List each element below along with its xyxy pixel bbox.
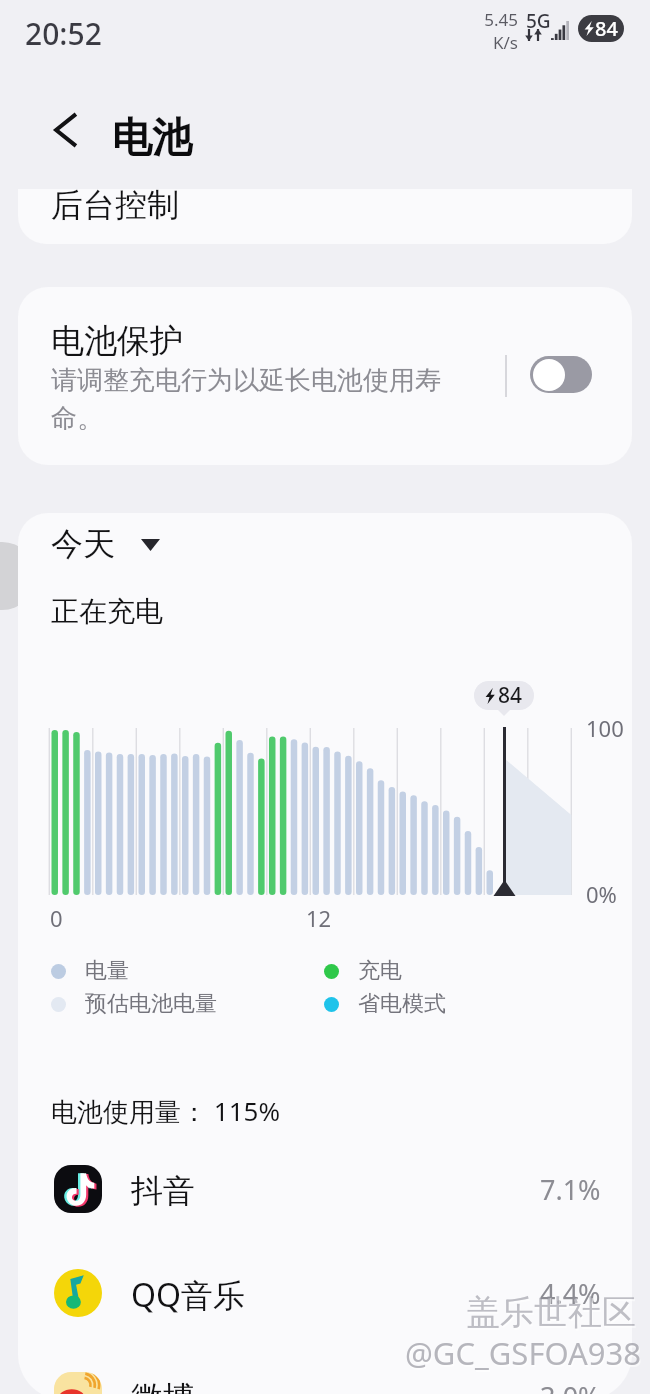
- staticText: 7.1%: [540, 1171, 601, 1208]
- staticText: 20:52: [25, 13, 102, 54]
- staticText: 4.4%: [540, 1275, 601, 1312]
- staticText: @GC_GSFOA938: [405, 1332, 642, 1374]
- button[interactable]: 后台控制: [18, 189, 632, 244]
- staticText: 电量: [85, 957, 129, 985]
- staticText: 今天: [51, 524, 115, 564]
- staticText: 12: [306, 903, 332, 933]
- staticText: 电池使用量： 115%: [51, 1093, 280, 1129]
- button[interactable]: Battery protection toggle: [530, 356, 592, 393]
- staticText: 84: [595, 15, 618, 42]
- staticText: 盖乐世社区: [467, 1293, 637, 1336]
- staticText: 电池: [112, 112, 192, 162]
- button[interactable]: 今天: [51, 524, 160, 564]
- staticText: 0%: [586, 879, 617, 909]
- staticText: 预估电池电量: [85, 990, 217, 1018]
- staticText: @GC_GSFOA938: [406, 1334, 643, 1376]
- staticText: 盖乐世社区: [466, 1291, 636, 1334]
- staticText: 省电模式: [358, 990, 446, 1018]
- staticText: K/s: [493, 31, 518, 54]
- staticText: 后台控制: [51, 189, 179, 225]
- staticText: 100: [586, 713, 624, 743]
- staticText: 微博: [131, 1378, 195, 1394]
- staticText: 电池保护: [51, 320, 183, 362]
- staticText: 84: [498, 681, 523, 710]
- button[interactable]: 微博: [18, 1348, 632, 1394]
- staticText: 正在充电: [51, 594, 163, 629]
- staticText: 5G: [526, 8, 551, 34]
- staticText: QQ音乐: [131, 1273, 245, 1317]
- button[interactable]: QQ音乐: [18, 1245, 632, 1341]
- staticText: 充电: [358, 957, 402, 985]
- staticText: 5.45: [484, 8, 518, 31]
- button[interactable]: 抖音: [18, 1141, 632, 1237]
- button[interactable]: Back: [46, 108, 90, 152]
- button[interactable]: 电池保护: [18, 287, 632, 465]
- staticText: 请调整充电行为以延长电池使用寿命。: [51, 364, 471, 435]
- staticText: 3.0%: [540, 1378, 601, 1394]
- staticText: 抖音: [131, 1171, 195, 1211]
- staticText: 0: [50, 903, 63, 933]
